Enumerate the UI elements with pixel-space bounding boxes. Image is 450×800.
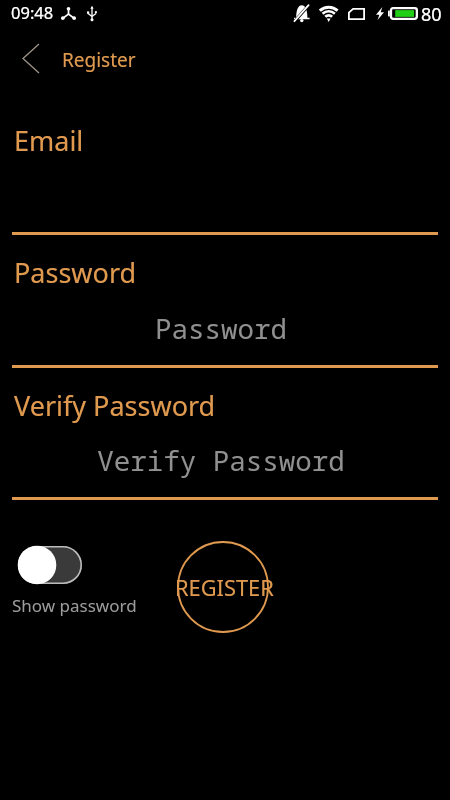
button[interactable]: REGISTER bbox=[167, 541, 279, 633]
button[interactable]: Email bbox=[0, 101, 450, 236]
staticText: Email bbox=[14, 122, 84, 159]
button[interactable]: Show password bbox=[8, 540, 143, 622]
staticText: Verify Password bbox=[14, 387, 216, 424]
staticText: 09:48 bbox=[11, 1, 54, 23]
staticText: Password bbox=[12, 310, 430, 347]
staticText: 80 bbox=[421, 2, 442, 27]
staticText: Register bbox=[62, 47, 136, 73]
button[interactable]: Back bbox=[0, 30, 56, 86]
staticText: Verify Password bbox=[12, 442, 430, 479]
button[interactable]: Verify Password bbox=[0, 369, 450, 501]
button[interactable]: Password bbox=[0, 236, 450, 369]
staticText: Password bbox=[14, 254, 137, 291]
staticText: Show password bbox=[12, 594, 137, 617]
staticText: REGISTER bbox=[175, 573, 274, 603]
